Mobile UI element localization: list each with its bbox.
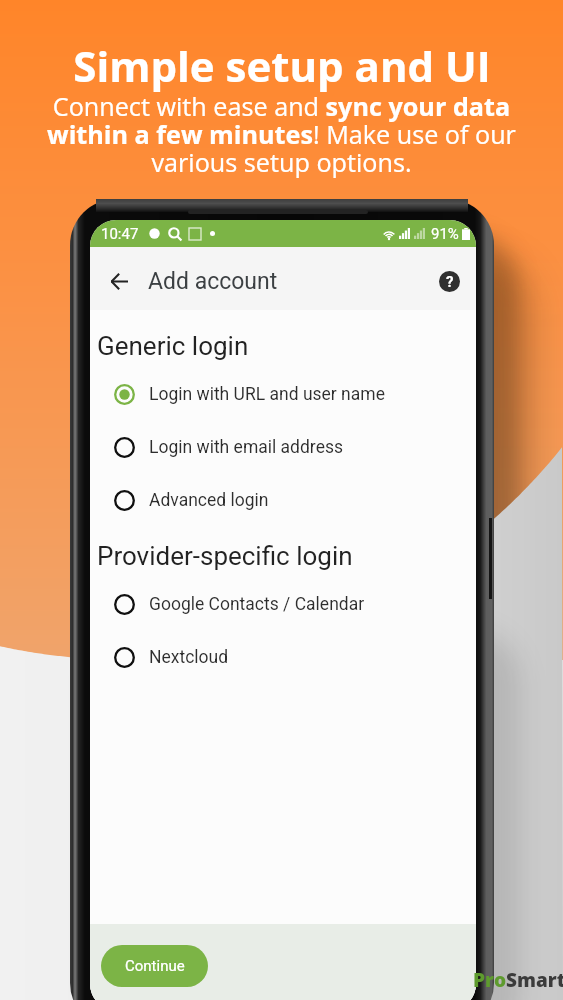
staticText: 10:47: [101, 225, 139, 243]
staticText: Provider-specific login: [97, 541, 353, 571]
button[interactable]: Continue: [101, 945, 208, 987]
staticText: Generic login: [97, 331, 249, 361]
staticText: Advanced login: [149, 490, 269, 511]
staticText: Add account: [148, 268, 278, 295]
staticText: Continue: [125, 957, 185, 975]
staticText: Connect with ease and sync your data wit…: [0, 89, 563, 179]
button[interactable]: Back: [97, 259, 141, 303]
button[interactable]: Nextcloud: [90, 631, 476, 684]
button[interactable]: Login with email address: [90, 421, 476, 474]
button[interactable]: Help: [429, 261, 469, 301]
button[interactable]: Login with URL and user name: [90, 368, 476, 421]
staticText: Login with URL and user name: [149, 384, 385, 405]
staticText: Login with email address: [149, 437, 343, 458]
button[interactable]: Google Contacts / Calendar: [90, 578, 476, 631]
staticText: ProSmart: [473, 967, 563, 993]
staticText: ?: [446, 273, 454, 291]
staticText: 91%: [431, 225, 459, 243]
staticText: Nextcloud: [149, 647, 229, 668]
button[interactable]: Advanced login: [90, 474, 476, 527]
staticText: Simple setup and UI: [73, 37, 491, 94]
staticText: Google Contacts / Calendar: [149, 594, 365, 615]
